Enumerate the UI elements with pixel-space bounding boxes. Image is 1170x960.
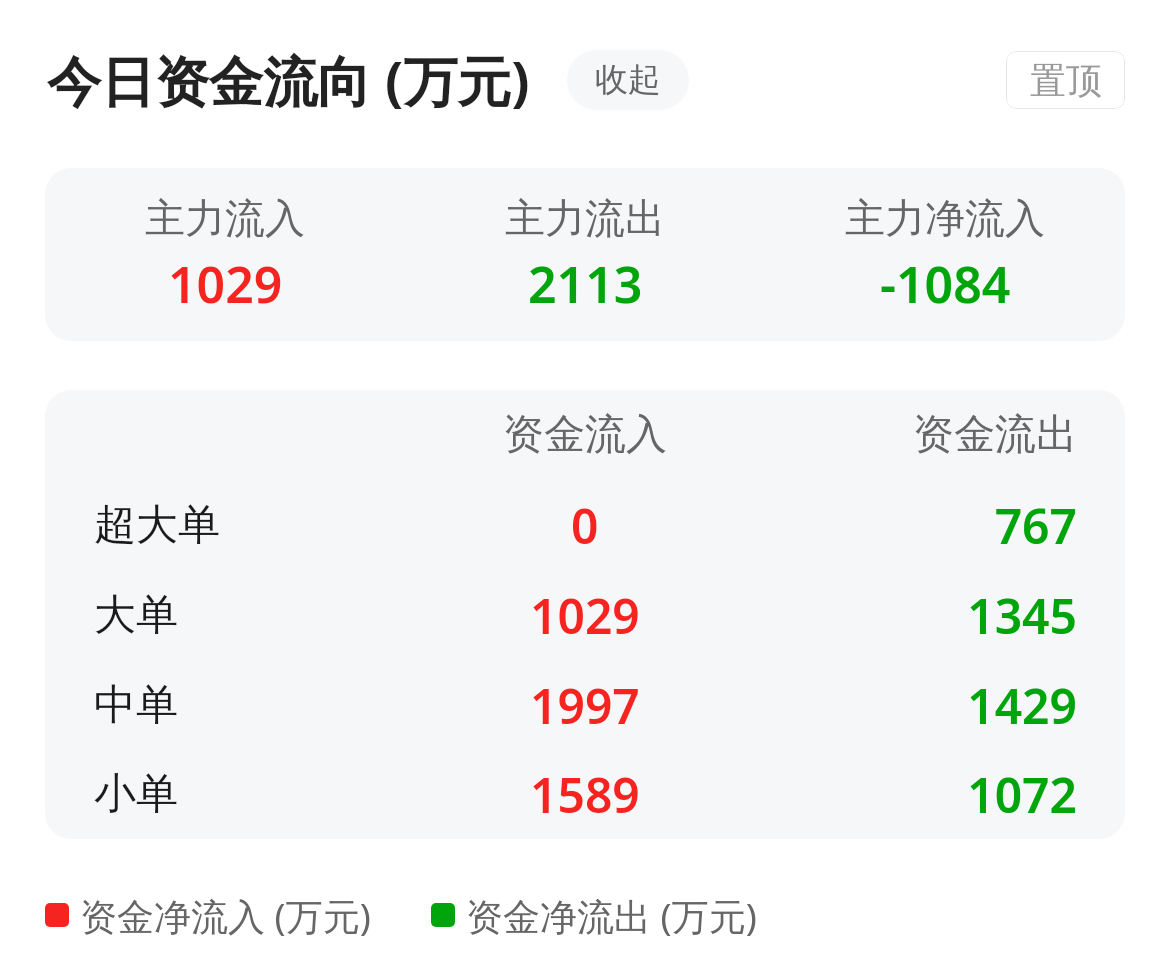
staticText: 1997 [530,673,640,738]
button[interactable]: 超大单 [45,480,1125,570]
staticText: 大单 [94,589,178,642]
staticText: 主力流入 [145,193,305,243]
staticText: 资金净流出 (万元) [466,890,757,941]
staticText: 资金净流入 (万元) [80,890,371,941]
staticText: 置顶 [1030,58,1102,103]
staticText: 1345 [967,583,1077,648]
staticText: -1084 [880,250,1011,318]
staticText: 0 [571,493,599,558]
staticText: 1029 [530,583,640,648]
staticText: 资金流入 [503,409,667,461]
staticText: 1429 [967,673,1077,738]
staticText: 2113 [528,250,643,318]
staticText: 收起 [595,59,661,101]
staticText: 767 [994,493,1077,558]
staticText: 主力流出 [505,193,665,243]
staticText: 主力净流入 [845,193,1045,243]
staticText: 中单 [94,679,178,732]
staticText: 1072 [967,762,1077,827]
staticText: 超大单 [94,499,220,552]
staticText: 今日资金流向 (万元) [47,43,530,117]
staticText: 资金流出 [913,409,1077,461]
button[interactable]: 置顶 [1006,51,1125,109]
button[interactable]: 大单 [45,570,1125,660]
button[interactable]: 小单 [45,750,1125,839]
staticText: 小单 [94,768,178,821]
button[interactable]: 中单 [45,660,1125,750]
staticText: 1589 [530,762,640,827]
button[interactable]: 收起 [567,50,689,110]
staticText: 1029 [168,250,283,318]
